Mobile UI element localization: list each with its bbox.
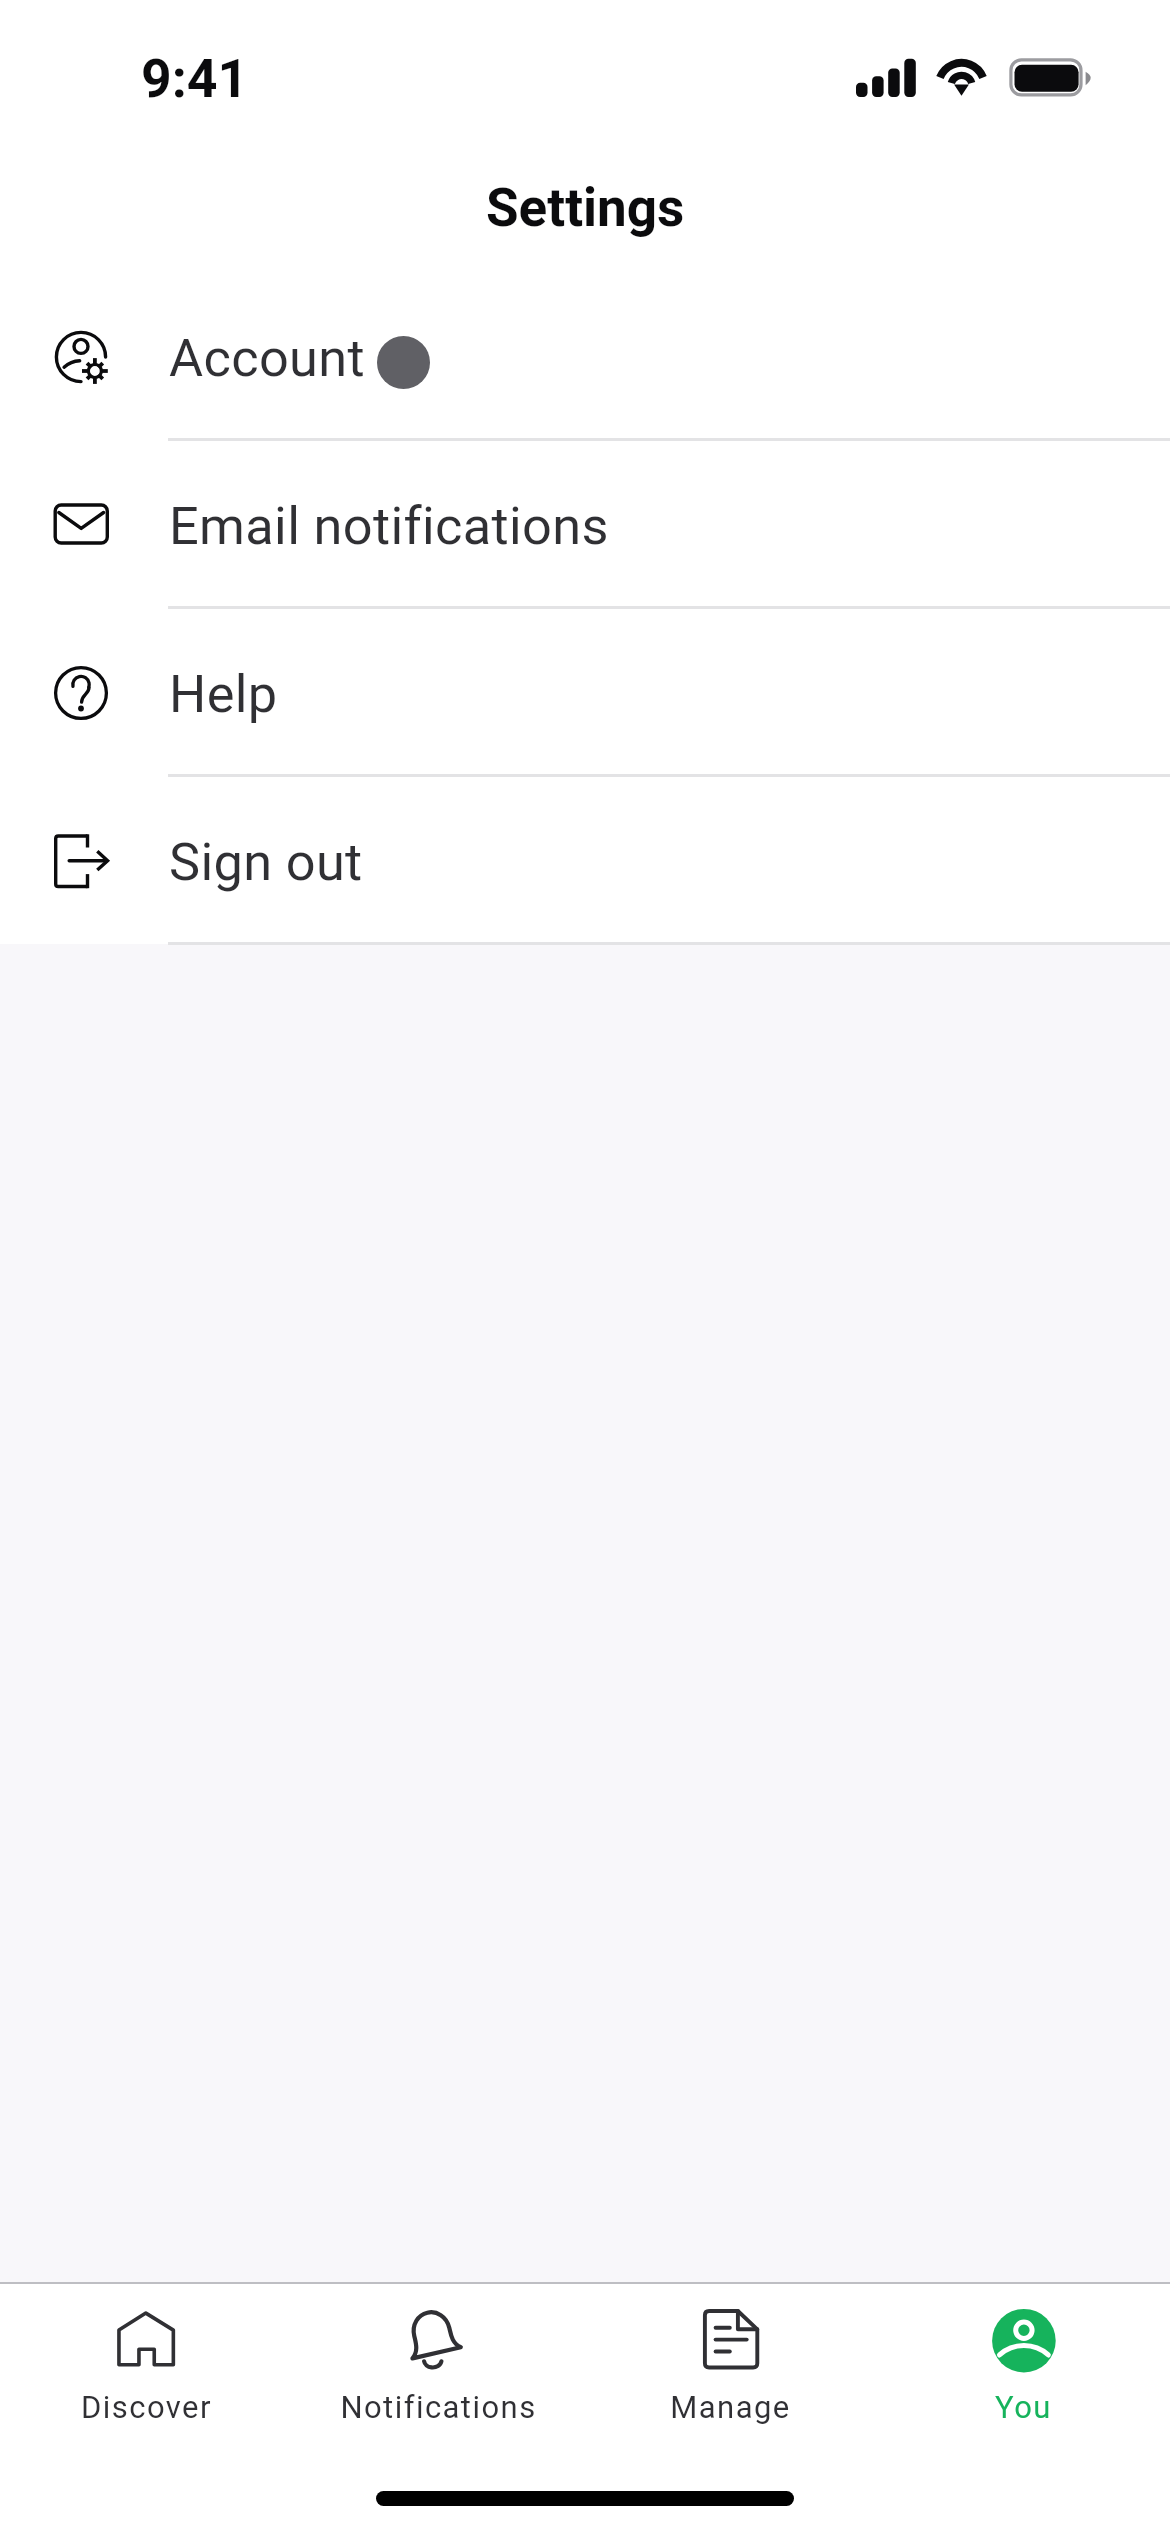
button[interactable]: Manage bbox=[584, 2284, 877, 2419]
other: You bbox=[991, 2309, 1057, 2375]
staticText: Sign out bbox=[169, 831, 363, 892]
other: Help bbox=[52, 664, 110, 722]
other: Email notifications bbox=[52, 496, 110, 554]
other: Discover bbox=[113, 2309, 179, 2375]
other: Account bbox=[52, 328, 110, 386]
other: Sign out bbox=[52, 832, 110, 890]
staticText: Discover bbox=[81, 2389, 212, 2425]
button[interactable]: Help bbox=[0, 609, 1170, 777]
other: Manage bbox=[698, 2309, 764, 2375]
staticText: Account bbox=[169, 327, 365, 388]
other: Notifications bbox=[405, 2309, 471, 2375]
staticText: Manage bbox=[670, 2389, 791, 2425]
button[interactable]: You bbox=[877, 2284, 1170, 2419]
button[interactable]: Account bbox=[0, 273, 1170, 441]
button[interactable]: Email notifications bbox=[0, 441, 1170, 609]
staticText: You bbox=[995, 2389, 1052, 2425]
staticText: 9:41 bbox=[141, 47, 249, 110]
button[interactable]: Notifications bbox=[292, 2284, 584, 2419]
staticText: Email notifications bbox=[169, 495, 609, 556]
staticText: Notifications bbox=[340, 2389, 537, 2425]
button[interactable]: Sign out bbox=[0, 777, 1170, 945]
staticText: Help bbox=[169, 663, 278, 724]
button[interactable]: Discover bbox=[0, 2284, 292, 2419]
staticText: Settings bbox=[486, 177, 685, 239]
